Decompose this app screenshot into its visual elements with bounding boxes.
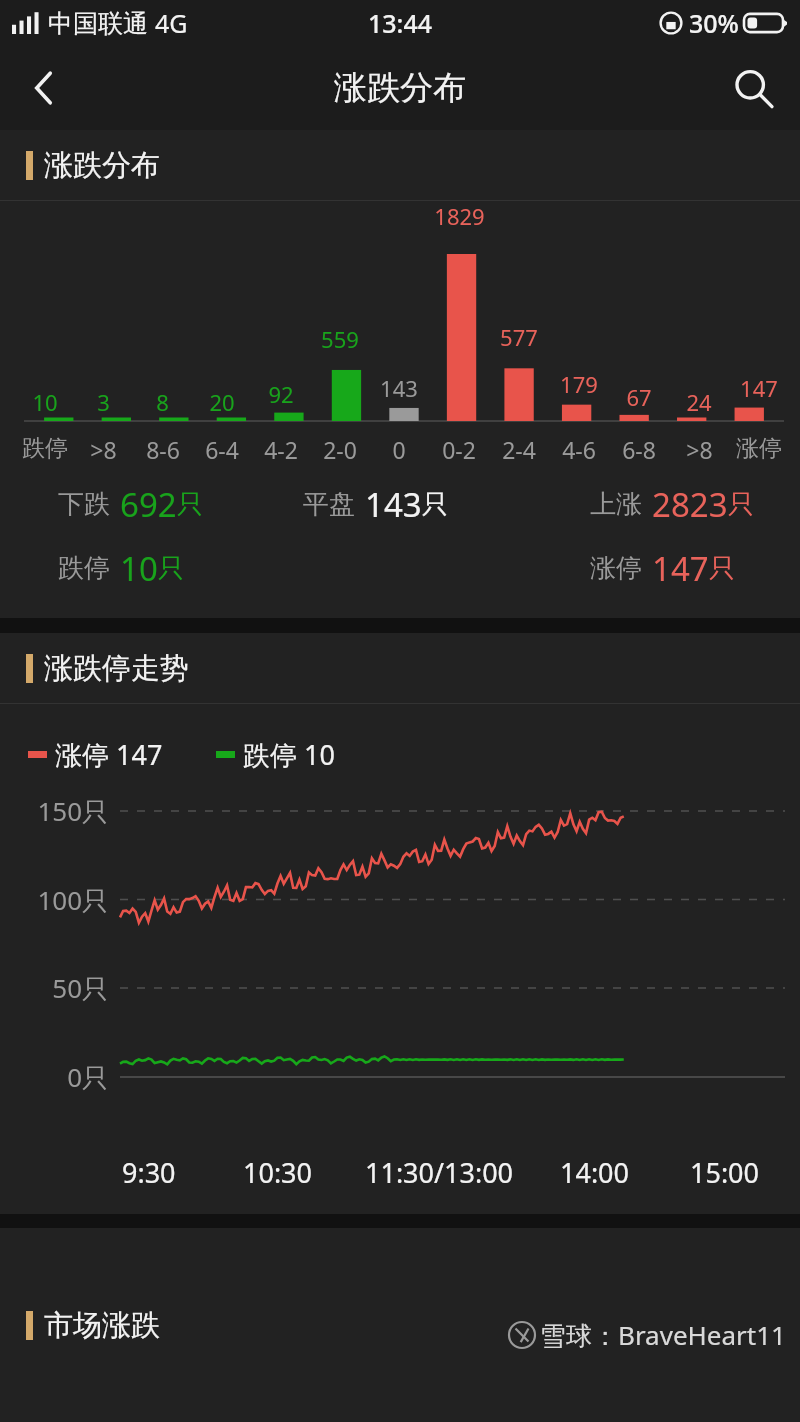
staticText: 20 bbox=[209, 387, 235, 417]
staticText: 只 bbox=[158, 552, 184, 585]
button[interactable]: 涨跌停走势 bbox=[0, 633, 800, 704]
button[interactable]: 市场涨跌 bbox=[0, 1228, 800, 1422]
staticText: 涨跌分布 bbox=[334, 67, 466, 109]
button[interactable]: 涨停 bbox=[533, 536, 800, 600]
button[interactable]: Search bbox=[722, 57, 784, 119]
staticText: 10 bbox=[32, 387, 58, 417]
staticText: 上涨 bbox=[590, 488, 642, 521]
staticText: 涨停 147 bbox=[55, 736, 163, 773]
staticText: 2823 bbox=[652, 482, 728, 527]
staticText: 涨停 bbox=[590, 552, 642, 585]
staticText: 2-0 bbox=[323, 434, 357, 465]
staticText: 0只 bbox=[0, 1059, 108, 1095]
staticText: 涨停 bbox=[736, 434, 782, 463]
staticText: 147 bbox=[740, 373, 778, 403]
button[interactable]: 平盘 bbox=[266, 472, 533, 536]
staticText: 平盘 bbox=[303, 488, 355, 521]
staticText: 150只 bbox=[0, 793, 108, 829]
staticText: 24 bbox=[686, 387, 712, 417]
staticText: 6-8 bbox=[622, 434, 656, 465]
staticText: 只 bbox=[709, 552, 735, 585]
staticText: 涨跌停走势 bbox=[44, 650, 189, 687]
staticText: 15:00 bbox=[690, 1154, 760, 1191]
staticText: 0 bbox=[392, 434, 406, 465]
button[interactable]: 跌停 bbox=[0, 536, 266, 600]
staticText: 147 bbox=[652, 546, 709, 591]
staticText: 13:44 bbox=[368, 6, 433, 40]
staticText: 577 bbox=[500, 322, 538, 352]
staticText: 4-2 bbox=[264, 434, 298, 465]
staticText: 10 bbox=[120, 546, 158, 591]
staticText: 11:30/13:00 bbox=[365, 1154, 514, 1191]
staticText: 100只 bbox=[0, 882, 108, 918]
button[interactable]: 涨跌分布 bbox=[0, 130, 800, 201]
staticText: 10:30 bbox=[243, 1154, 313, 1191]
staticText: 雪球：BraveHeart11 bbox=[540, 1317, 786, 1353]
button[interactable]: 下跌 bbox=[0, 472, 266, 536]
staticText: 179 bbox=[560, 369, 598, 399]
staticText: 1829 bbox=[434, 201, 485, 231]
staticText: 8 bbox=[156, 387, 169, 417]
staticText: 下跌 bbox=[58, 488, 110, 521]
staticText: 30% bbox=[689, 6, 739, 40]
staticText: 只 bbox=[177, 488, 203, 521]
staticText: 4G bbox=[155, 6, 188, 40]
staticText: 92 bbox=[268, 379, 294, 409]
staticText: 跌停 10 bbox=[243, 736, 335, 773]
button[interactable]: 上涨 bbox=[533, 472, 800, 536]
button[interactable]: Back bbox=[14, 58, 74, 118]
staticText: 2-4 bbox=[502, 434, 536, 465]
staticText: 9:30 bbox=[122, 1154, 176, 1191]
staticText: 3 bbox=[97, 387, 110, 417]
staticText: 67 bbox=[626, 382, 652, 412]
staticText: 6-4 bbox=[205, 434, 239, 465]
staticText: 跌停 bbox=[58, 552, 110, 585]
staticText: 跌停 bbox=[22, 434, 68, 463]
staticText: 只 bbox=[422, 488, 448, 521]
staticText: 143 bbox=[380, 373, 418, 403]
staticText: 只 bbox=[728, 488, 754, 521]
staticText: 0-2 bbox=[442, 434, 476, 465]
staticText: >8 bbox=[686, 434, 713, 465]
staticText: 8-6 bbox=[146, 434, 180, 465]
staticText: 143 bbox=[365, 482, 422, 527]
staticText: 涨跌分布 bbox=[44, 147, 160, 184]
staticText: 中国联通 bbox=[48, 8, 148, 39]
staticText: 市场涨跌 bbox=[44, 1307, 160, 1344]
staticText: 692 bbox=[120, 482, 177, 527]
staticText: 559 bbox=[321, 324, 359, 354]
staticText: 4-6 bbox=[562, 434, 596, 465]
staticText: 14:00 bbox=[560, 1154, 630, 1191]
staticText: >8 bbox=[90, 434, 117, 465]
staticText: 50只 bbox=[0, 970, 108, 1006]
